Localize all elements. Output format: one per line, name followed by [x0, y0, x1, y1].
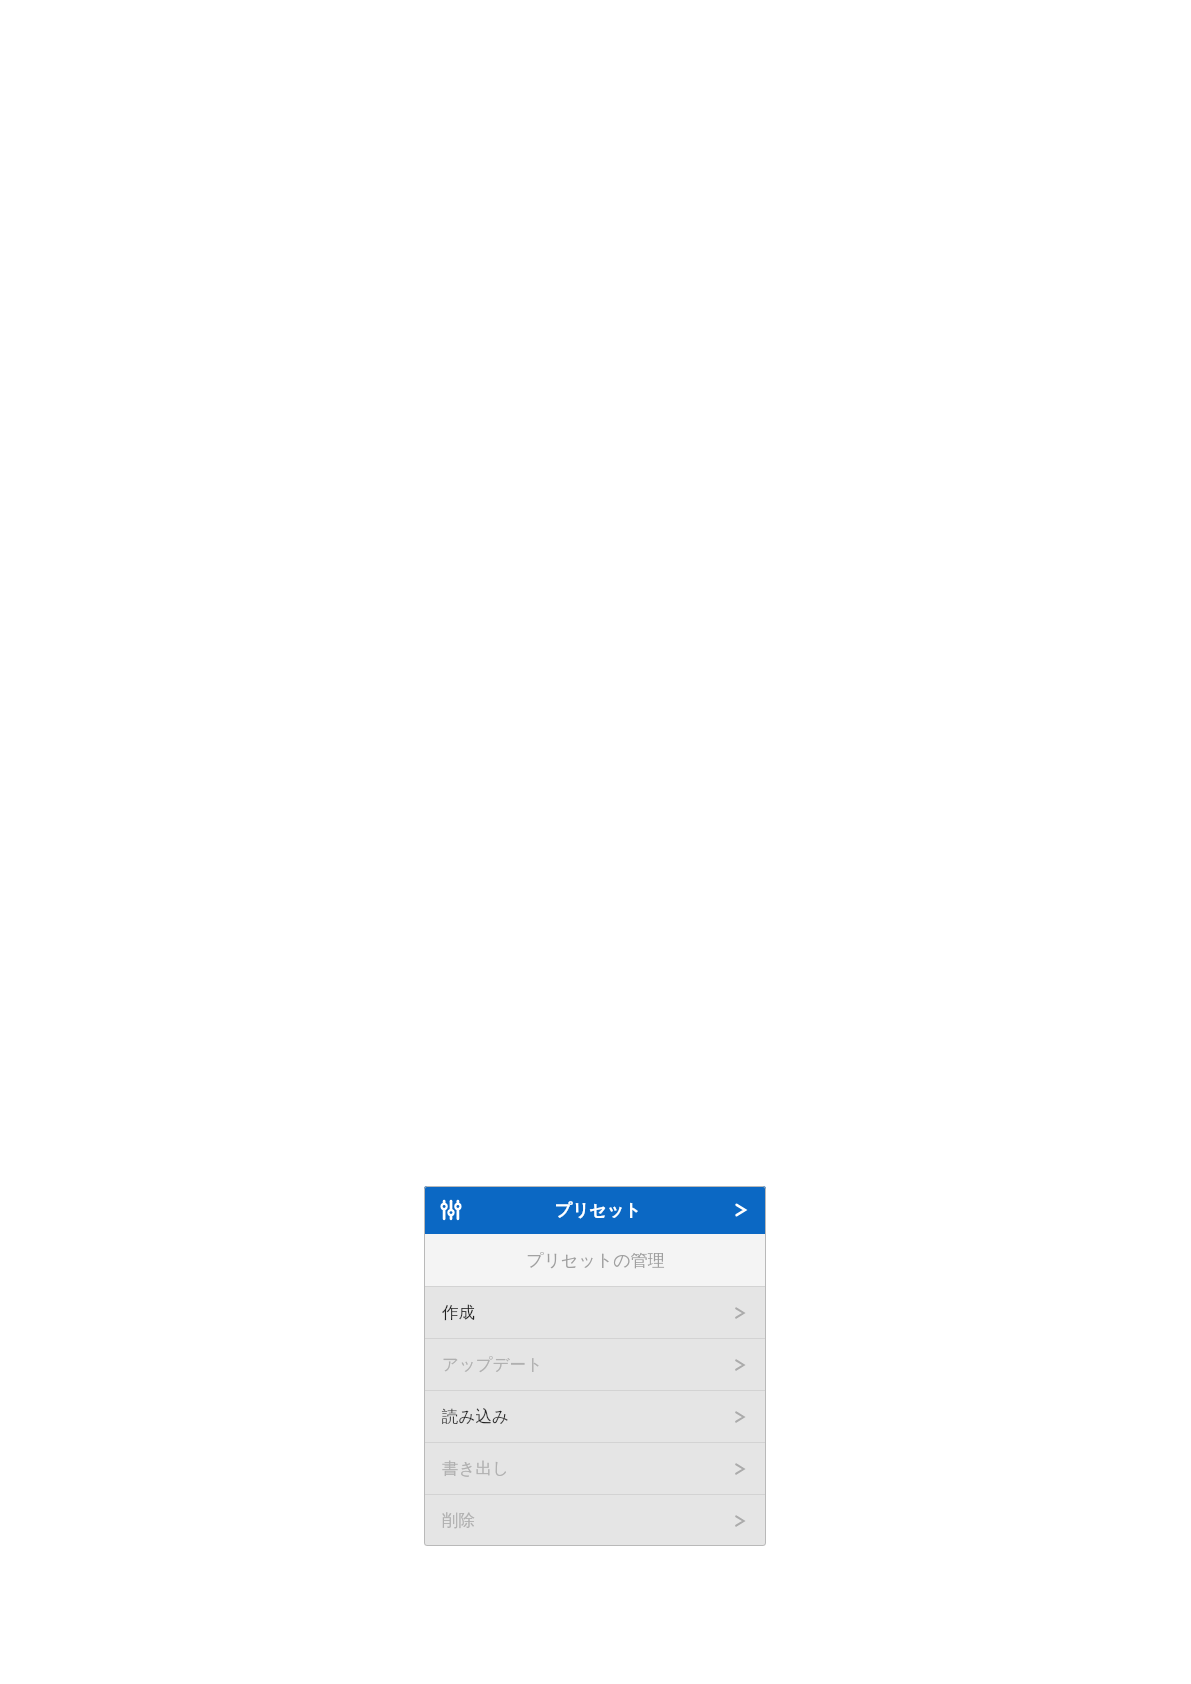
button[interactable]: 削除	[424, 1495, 766, 1546]
button[interactable]: 作成	[424, 1287, 766, 1338]
button[interactable]: 書き出し	[424, 1443, 766, 1494]
staticText: プリセットの管理	[526, 1250, 665, 1271]
staticText: 読み込み	[442, 1406, 732, 1427]
staticText: 書き出し	[442, 1458, 732, 1479]
staticText: アップデート	[442, 1354, 732, 1375]
button[interactable]: Presets	[424, 1186, 766, 1234]
staticText: 作成	[442, 1302, 732, 1323]
staticText: プリセット	[464, 1200, 732, 1221]
other: Open presets	[732, 1200, 752, 1220]
other: Presets	[438, 1197, 464, 1223]
staticText: 削除	[442, 1510, 732, 1531]
button[interactable]: 読み込み	[424, 1391, 766, 1442]
button[interactable]: アップデート	[424, 1339, 766, 1390]
